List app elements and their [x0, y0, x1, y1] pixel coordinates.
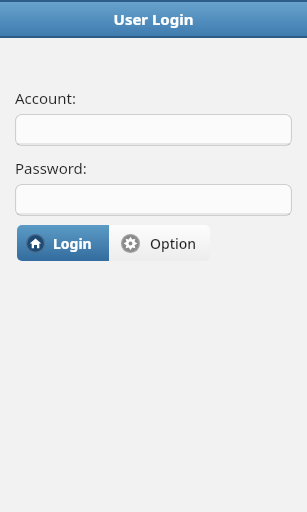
- button[interactable]: Option: [109, 225, 210, 261]
- staticText: Option: [150, 234, 197, 253]
- staticText: User Login: [0, 9, 307, 29]
- staticText: Account:: [15, 88, 77, 108]
- staticText: Login: [53, 234, 92, 253]
- button[interactable]: Login: [17, 225, 109, 261]
- staticText: Password:: [15, 158, 87, 178]
- button[interactable]: [15, 184, 292, 216]
- button[interactable]: [15, 114, 292, 146]
